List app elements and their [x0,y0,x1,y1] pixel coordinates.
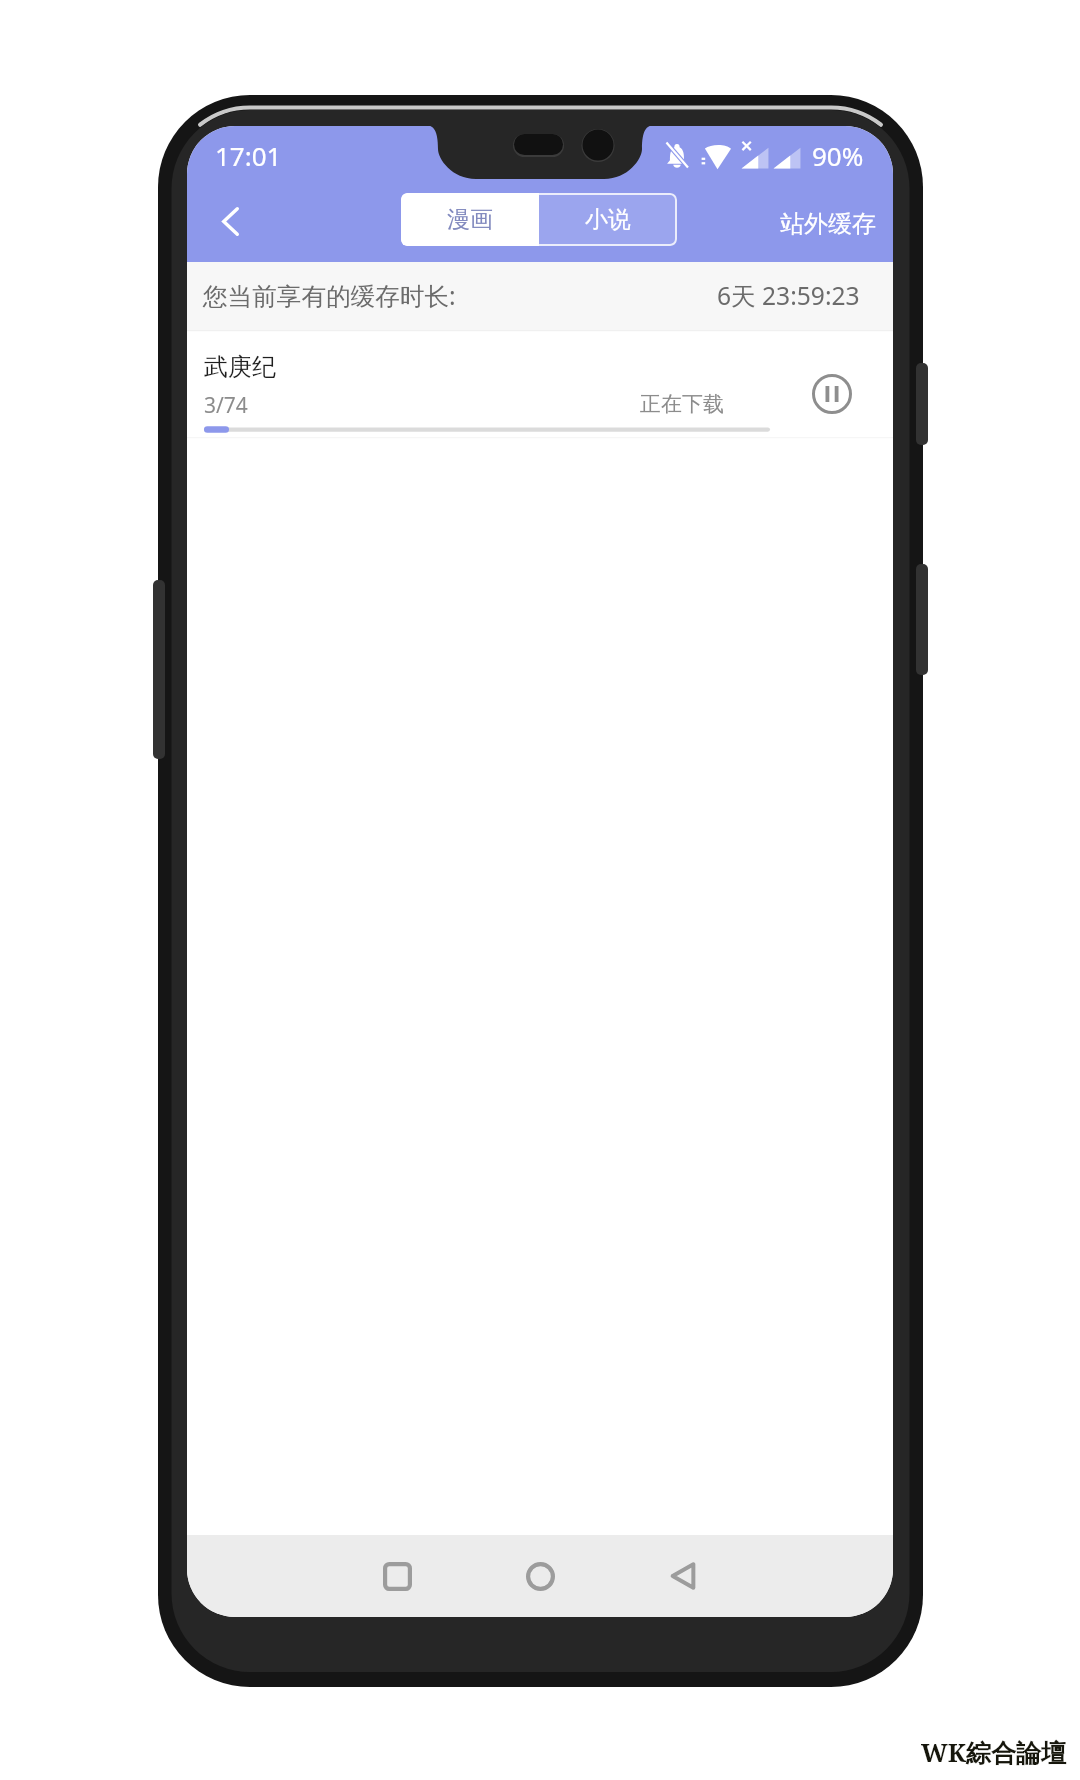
button[interactable]: 小说 [539,193,677,246]
button[interactable]: 武庚纪 [187,330,893,442]
staticText: 90% [812,138,864,173]
button[interactable]: 站外缓存 [763,193,893,255]
staticText: 小说 [585,205,631,234]
staticText: 6天 23:59:23 [717,279,860,313]
button[interactable]: Back [187,185,259,262]
button[interactable]: 漫画 [401,193,539,246]
button[interactable]: Back [642,1536,722,1616]
button[interactable]: Recents [357,1536,437,1616]
staticText: 漫画 [447,205,493,234]
staticText: 站外缓存 [780,209,876,239]
staticText: 3/74 [204,391,248,420]
button[interactable]: Home [500,1536,580,1616]
staticText: 17:01 [215,138,282,173]
button[interactable]: Pause download [794,356,869,431]
staticText: 您当前享有的缓存时长: [203,279,456,313]
staticText: 武庚纪 [204,352,276,382]
staticText: WK綜合論壇 [921,1735,1067,1769]
staticText: 正在下载 [640,391,724,417]
